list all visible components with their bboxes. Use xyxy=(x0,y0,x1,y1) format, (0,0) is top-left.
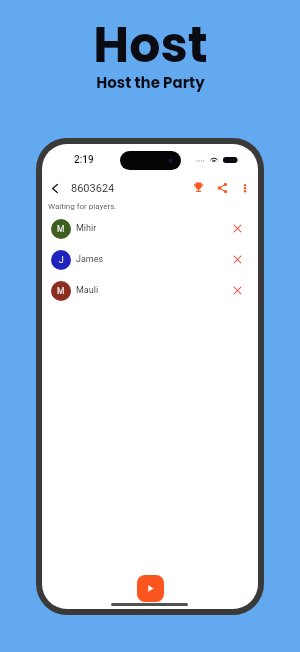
staticText: Mihir xyxy=(76,223,97,234)
button[interactable]: M xyxy=(42,280,258,301)
staticText: M xyxy=(57,224,65,234)
staticText: Mauli xyxy=(76,285,99,296)
button[interactable]: Leaderboard xyxy=(189,178,207,196)
staticText: Waiting for players. xyxy=(48,202,117,211)
button[interactable]: Back xyxy=(46,179,64,197)
button[interactable]: Share xyxy=(213,179,231,197)
staticText: M xyxy=(57,286,65,296)
button[interactable]: Remove Mihir xyxy=(230,221,245,236)
staticText: 8603624 xyxy=(71,182,115,195)
staticText: James xyxy=(76,254,104,265)
button[interactable]: Start game xyxy=(137,575,164,602)
button[interactable]: More options xyxy=(237,180,253,196)
staticText: J xyxy=(59,255,64,265)
button[interactable]: Remove Mauli xyxy=(230,283,245,298)
staticText: 2:19 xyxy=(74,154,94,166)
staticText: Host the Party xyxy=(96,72,205,93)
button[interactable]: J xyxy=(42,249,258,270)
button[interactable]: M xyxy=(42,218,258,239)
staticText: Host xyxy=(93,11,208,80)
button[interactable]: Remove James xyxy=(230,252,245,267)
